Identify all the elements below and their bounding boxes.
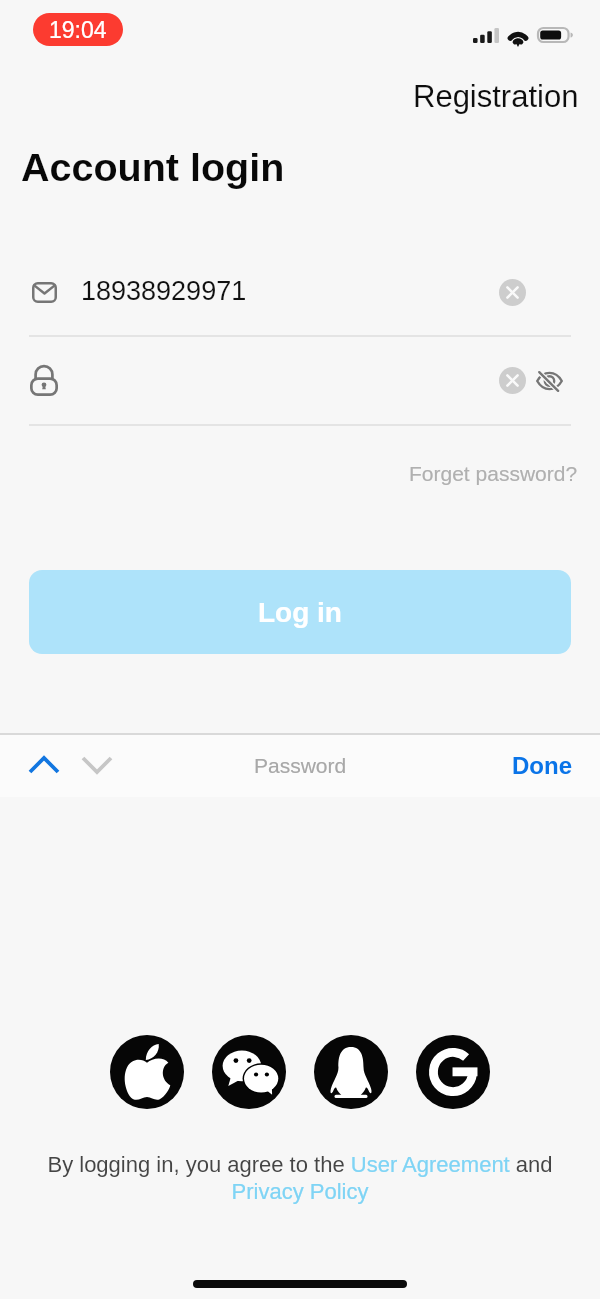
staticText: Account login	[21, 145, 285, 189]
button[interactable]: 18938929971	[0, 260, 600, 336]
button[interactable]: Show password	[527, 358, 572, 403]
button[interactable]: Done	[487, 742, 600, 789]
button[interactable]: Log in	[29, 570, 571, 654]
button[interactable]: Clear password	[490, 358, 535, 403]
button[interactable]: Sign in with Apple	[110, 1035, 184, 1109]
staticText: Password	[254, 754, 347, 777]
staticText: By logging in, you agree to the User Agr…	[31, 1152, 569, 1204]
button[interactable]: Sign in with WeChat	[212, 1035, 286, 1109]
button[interactable]: Clear email	[490, 270, 535, 315]
staticText: Registration	[413, 79, 579, 114]
staticText: Done	[512, 752, 572, 779]
staticText: 19:04	[49, 17, 107, 43]
button[interactable]: Sign in with QQ	[314, 1035, 388, 1109]
staticText: Forget password?	[409, 462, 578, 485]
button[interactable]: Clear password	[0, 348, 600, 424]
button[interactable]: Forget password?	[395, 456, 600, 491]
button[interactable]: Next field	[67, 742, 127, 788]
button[interactable]: Previous field	[14, 742, 74, 788]
button[interactable]: Sign in with Google	[416, 1035, 490, 1109]
button[interactable]: Registration	[399, 73, 600, 120]
staticText: 18938929971	[81, 276, 247, 306]
staticText: Log in	[258, 597, 342, 628]
